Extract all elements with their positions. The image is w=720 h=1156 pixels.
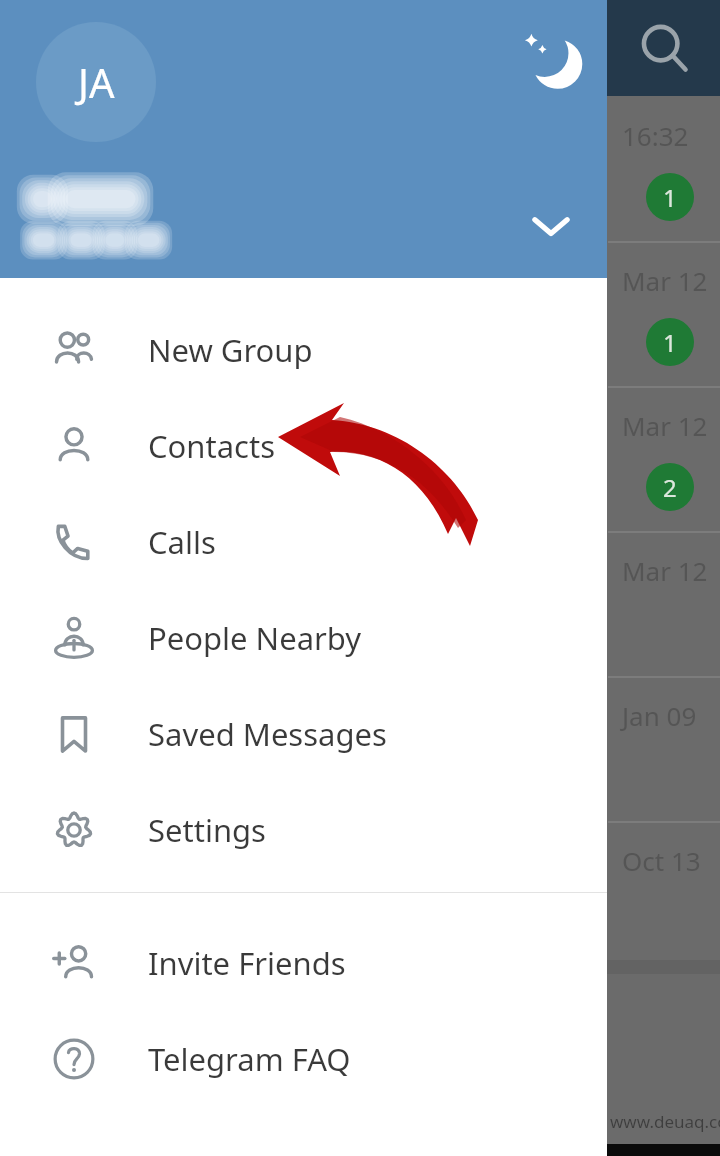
staticText: Mar 12: [622, 408, 708, 443]
button[interactable]: Saved Messages: [0, 686, 607, 782]
staticText: Oct 13: [622, 843, 701, 878]
staticText: 2: [663, 471, 677, 504]
staticText: Settings: [148, 809, 266, 851]
button[interactable]: Telegram FAQ: [0, 1011, 607, 1107]
button[interactable]: Calls: [0, 494, 607, 590]
button[interactable]: People Nearby: [0, 590, 607, 686]
button[interactable]: New Group: [0, 302, 607, 398]
button[interactable]: JA: [0, 0, 607, 278]
staticText: Contacts: [148, 425, 276, 467]
button[interactable]: Search: [638, 22, 692, 76]
staticText: www.deuaq.com: [610, 1110, 720, 1133]
button[interactable]: Invite Friends: [0, 915, 607, 1011]
staticText: Mar 12: [622, 553, 708, 588]
staticText: People Nearby: [148, 617, 362, 659]
button[interactable]: Settings: [0, 782, 607, 878]
staticText: 16:32: [622, 118, 689, 153]
staticText: Telegram FAQ: [148, 1038, 351, 1080]
staticText: Jan 09: [622, 698, 697, 733]
staticText: Saved Messages: [148, 713, 387, 755]
staticText: New Group: [148, 329, 313, 371]
staticText: 1: [663, 181, 677, 214]
staticText: Calls: [148, 521, 216, 563]
staticText: Mar 12: [622, 263, 708, 298]
button[interactable]: JA: [36, 22, 156, 142]
button[interactable]: Expand accounts: [520, 195, 582, 257]
button[interactable]: Contacts: [0, 398, 607, 494]
staticText: 1: [663, 326, 677, 359]
button[interactable]: Night mode: [512, 20, 588, 96]
staticText: Invite Friends: [148, 942, 346, 984]
staticText: JA: [78, 55, 115, 109]
